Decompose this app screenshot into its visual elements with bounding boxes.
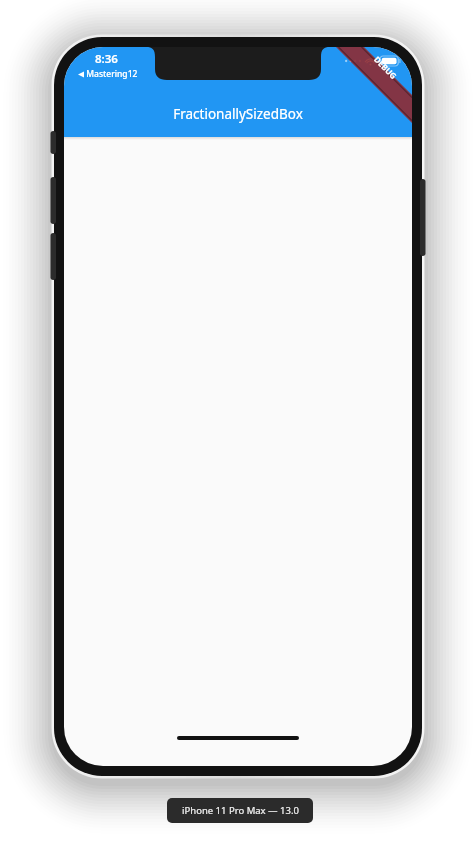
other: Cellular signal: [345, 58, 361, 64]
staticText: Mastering12: [84, 68, 138, 80]
staticText: 8:36: [95, 51, 118, 67]
staticText: DEBUG: [372, 54, 399, 81]
staticText: iPhone 11 Pro Max — 13.0: [182, 804, 299, 817]
staticText: FractionallySizedBox: [173, 105, 303, 123]
button[interactable]: iPhone 11 Pro Max — 13.0: [167, 798, 313, 823]
button[interactable]: 8:36: [76, 50, 140, 80]
other: Wi-Fi: [365, 57, 376, 66]
other: Battery: [380, 56, 401, 66]
